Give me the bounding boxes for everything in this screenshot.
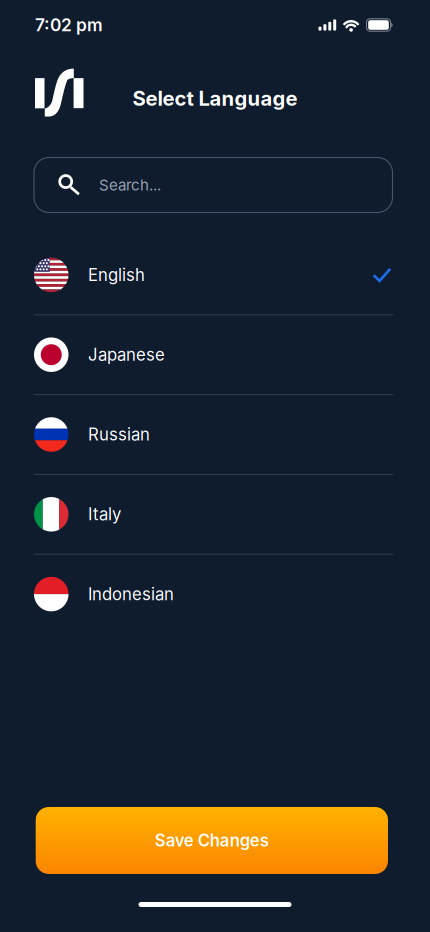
staticText: Russian xyxy=(88,424,150,445)
staticText: Japanese xyxy=(88,345,165,365)
staticText: English xyxy=(88,265,145,285)
staticText: 7:02 pm xyxy=(35,14,103,35)
button[interactable]: Indonesian xyxy=(0,555,430,633)
staticText: Italy xyxy=(88,504,121,524)
staticText: Save Changes xyxy=(155,830,269,851)
staticText: Select Language xyxy=(132,86,297,110)
button[interactable]: Search xyxy=(34,157,392,212)
button[interactable]: Italy xyxy=(0,475,430,554)
button[interactable]: Russian xyxy=(0,395,430,474)
staticText: Indonesian xyxy=(88,584,174,604)
button[interactable]: Save Changes xyxy=(36,807,388,874)
staticText: Search... xyxy=(99,176,161,194)
button[interactable]: English xyxy=(0,235,430,314)
button[interactable]: Japanese xyxy=(0,315,430,394)
